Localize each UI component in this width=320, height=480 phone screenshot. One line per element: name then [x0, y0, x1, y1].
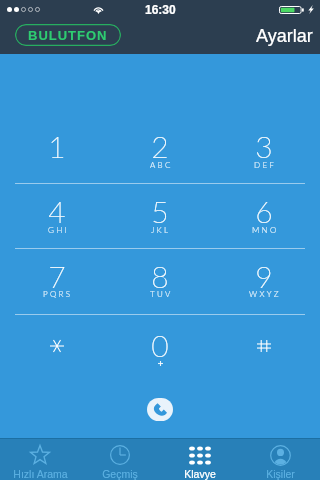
staticText: BULUTFON — [28, 28, 108, 43]
button[interactable]: Klavye — [160, 439, 240, 480]
button[interactable]: 8 — [108, 248, 212, 314]
button[interactable]: 9 — [212, 248, 316, 314]
button[interactable]: BULUTFON — [15, 24, 121, 46]
staticText: Kişiler — [266, 468, 295, 480]
staticText: ABC — [150, 160, 173, 170]
staticText: Geçmiş — [102, 468, 138, 480]
button[interactable]: Kişiler — [240, 439, 320, 480]
staticText: Hızlı Arama — [13, 468, 68, 480]
staticText: 3 — [255, 128, 273, 164]
button[interactable] — [5, 314, 109, 380]
staticText: 7 — [48, 258, 66, 294]
button[interactable]: Call — [147, 398, 173, 421]
staticText: Ayarlar — [256, 26, 313, 46]
button[interactable] — [212, 314, 316, 380]
button[interactable]: 1 — [5, 117, 109, 183]
staticText: 5 — [151, 193, 169, 229]
button[interactable]: 2 — [108, 117, 212, 183]
staticText: 2 — [151, 128, 169, 164]
staticText: 1 — [48, 128, 66, 164]
staticText: WXYZ — [249, 289, 281, 299]
staticText: TUV — [150, 289, 173, 299]
staticText: GHI — [48, 225, 69, 235]
button[interactable]: Ayarlar — [246, 24, 320, 50]
button[interactable]: Geçmiş — [80, 439, 160, 480]
staticText: 4 — [48, 193, 66, 229]
button[interactable]: 6 — [212, 183, 316, 249]
button[interactable]: 5 — [108, 183, 212, 249]
staticText: JKL — [151, 225, 171, 235]
button[interactable]: 0 — [108, 314, 212, 380]
staticText: 6 — [255, 193, 273, 229]
staticText: MNO — [252, 225, 279, 235]
staticText: Klavye — [184, 468, 216, 480]
staticText: PQRS — [43, 289, 73, 299]
staticText: 9 — [255, 258, 273, 294]
button[interactable]: 3 — [212, 117, 316, 183]
button[interactable]: 7 — [5, 248, 109, 314]
staticText: DEF — [254, 160, 277, 170]
staticText: 8 — [151, 258, 169, 294]
staticText: 0 — [151, 327, 169, 363]
staticText: 16:30 — [145, 3, 176, 16]
button[interactable]: 4 — [5, 183, 109, 249]
button[interactable]: Hızlı Arama — [0, 439, 80, 480]
